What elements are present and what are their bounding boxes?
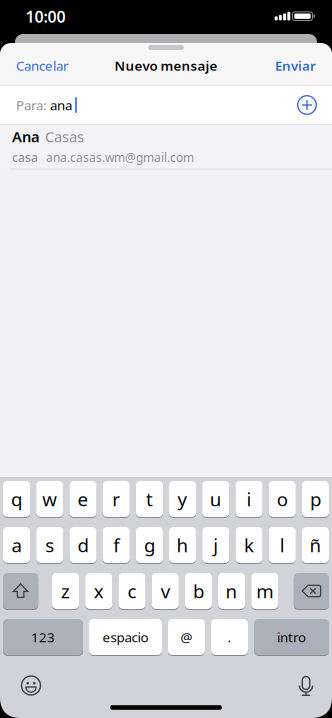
button[interactable]: s	[36, 527, 63, 563]
staticText: l	[280, 533, 285, 557]
button[interactable]: Mayúsculas	[3, 573, 38, 609]
staticText: j	[213, 533, 218, 557]
button[interactable]: i	[235, 481, 263, 517]
button[interactable]: a	[3, 527, 30, 563]
button[interactable]: o	[269, 481, 296, 517]
staticText: ana	[50, 96, 72, 114]
staticText: h	[177, 533, 189, 557]
button[interactable]: n	[218, 573, 245, 609]
staticText: r	[112, 487, 120, 511]
staticText: t	[146, 487, 153, 511]
staticText: o	[277, 487, 288, 511]
staticText: f	[113, 533, 119, 557]
staticText: n	[226, 579, 238, 603]
staticText: espacio	[102, 628, 148, 646]
button[interactable]: q	[3, 481, 30, 517]
staticText: d	[77, 533, 88, 557]
button[interactable]: g	[136, 527, 163, 563]
staticText: c	[127, 579, 136, 603]
button[interactable]: ñ	[302, 527, 329, 563]
button[interactable]: t	[136, 481, 163, 517]
staticText: ñ	[309, 533, 321, 557]
staticText: .	[227, 628, 231, 646]
button[interactable]: y	[169, 481, 196, 517]
button[interactable]: d	[69, 527, 97, 563]
staticText: intro	[277, 628, 306, 646]
button[interactable]: intro	[254, 619, 329, 655]
button[interactable]: r	[103, 481, 130, 517]
button[interactable]: c	[118, 573, 146, 609]
staticText: Para:	[16, 96, 50, 114]
button[interactable]: l	[269, 527, 296, 563]
staticText: x	[94, 579, 104, 603]
button[interactable]: Enviar	[275, 57, 316, 74]
staticText: @	[180, 628, 192, 646]
button[interactable]: k	[235, 527, 263, 563]
button[interactable]: z	[52, 573, 79, 609]
button[interactable]: j	[202, 527, 229, 563]
button[interactable]: w	[36, 481, 63, 517]
button[interactable]: Emoji	[21, 676, 40, 695]
button[interactable]: Cancelar	[16, 57, 69, 74]
staticText: 123	[31, 628, 55, 646]
staticText: e	[77, 487, 88, 511]
staticText: i	[246, 487, 251, 511]
button[interactable]: 123	[3, 619, 83, 655]
staticText: Cancelar	[16, 57, 69, 74]
staticText: a	[12, 533, 22, 557]
staticText: m	[256, 579, 273, 603]
staticText: Nuevo mensaje	[114, 57, 217, 74]
button[interactable]: Dictado	[298, 676, 314, 696]
staticText: p	[310, 487, 321, 511]
staticText: v	[161, 579, 170, 603]
staticText: 10:00	[25, 6, 65, 27]
staticText: Ana	[12, 127, 40, 146]
button[interactable]: Borrar	[294, 573, 329, 609]
staticText: w	[42, 487, 57, 511]
staticText: ana.casas.wm@gmail.com	[46, 149, 194, 165]
staticText: y	[178, 487, 188, 511]
staticText: z	[61, 579, 70, 603]
button[interactable]: .	[211, 619, 248, 655]
staticText: q	[11, 487, 22, 511]
button[interactable]: @	[168, 619, 205, 655]
staticText: s	[45, 533, 54, 557]
button[interactable]: u	[202, 481, 229, 517]
staticText: g	[144, 533, 155, 557]
staticText: u	[210, 487, 222, 511]
button[interactable]: f	[103, 527, 130, 563]
staticText: Casas	[45, 127, 84, 146]
staticText: Enviar	[275, 57, 316, 74]
staticText: b	[193, 579, 204, 603]
button[interactable]: b	[185, 573, 212, 609]
button[interactable]: espacio	[89, 619, 162, 655]
button[interactable]: Añadir contacto	[287, 85, 327, 125]
button[interactable]: Ana	[0, 124, 332, 168]
button[interactable]: p	[302, 481, 329, 517]
button[interactable]: m	[251, 573, 278, 609]
staticText: casa	[12, 149, 38, 165]
button[interactable]: v	[152, 573, 179, 609]
button[interactable]: h	[169, 527, 196, 563]
button[interactable]: e	[69, 481, 97, 517]
staticText: k	[244, 533, 254, 557]
button[interactable]: x	[85, 573, 112, 609]
